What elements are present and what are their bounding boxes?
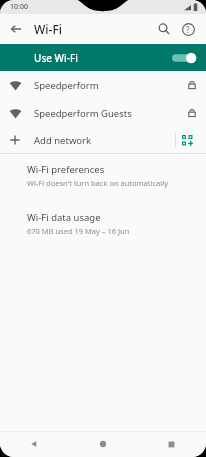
staticText: Add network bbox=[34, 134, 92, 147]
button[interactable]: Back bbox=[0, 431, 68, 457]
button[interactable]: Scan QR code bbox=[176, 129, 198, 151]
button[interactable]: Wi-Fi preferences bbox=[0, 159, 206, 192]
button[interactable]: Wi-Fi data usage bbox=[0, 207, 206, 240]
button[interactable]: Search bbox=[152, 17, 176, 41]
staticText: ? bbox=[186, 24, 190, 35]
button[interactable]: Add network bbox=[0, 127, 206, 153]
button[interactable]: Speedperform bbox=[0, 71, 206, 99]
staticText: 670 MB used 19 May – 16 Jun bbox=[27, 226, 130, 236]
staticText: Wi-Fi data usage bbox=[27, 211, 101, 224]
staticText: Use Wi-Fi bbox=[34, 51, 78, 65]
staticText: Speedperform Guests bbox=[34, 107, 132, 120]
staticText: Wi-Fi preferences bbox=[27, 163, 105, 176]
staticText: Wi-Fi doesn't turn back on automatically bbox=[27, 178, 168, 188]
button[interactable]: Use Wi-Fi bbox=[0, 44, 206, 71]
button[interactable]: Speedperform Guests bbox=[0, 99, 206, 127]
staticText: Speedperform bbox=[34, 79, 99, 92]
button[interactable]: Recent apps bbox=[137, 431, 206, 457]
button[interactable]: Home bbox=[68, 431, 137, 457]
staticText: 10:00 bbox=[10, 2, 28, 12]
staticText: Wi-Fi bbox=[34, 21, 62, 37]
button[interactable]: Help bbox=[176, 17, 200, 41]
button[interactable]: Back bbox=[5, 18, 27, 40]
